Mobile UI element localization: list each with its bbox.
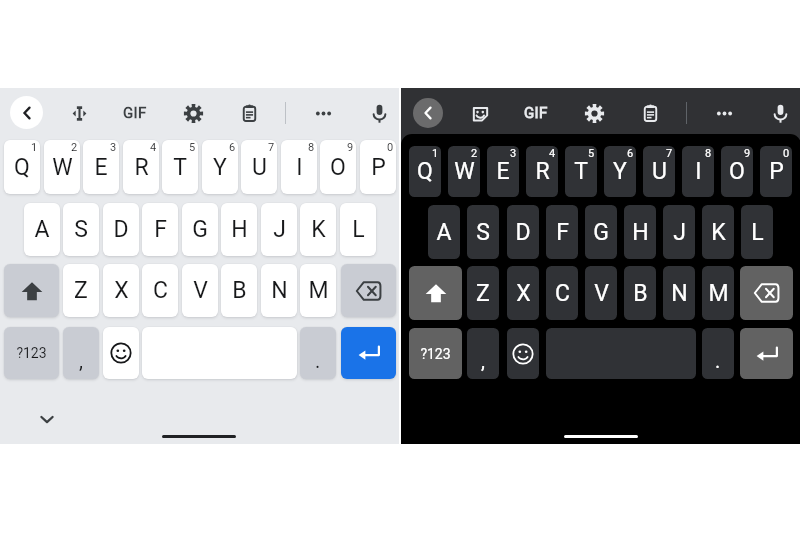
staticText: M <box>308 277 329 304</box>
button[interactable]: K <box>300 203 336 256</box>
button[interactable]: O <box>721 146 753 197</box>
button[interactable]: M <box>702 266 734 320</box>
staticText: X <box>516 280 531 307</box>
staticText: 7 <box>666 147 673 160</box>
button[interactable]: X <box>103 264 139 317</box>
button[interactable]: Backspace <box>341 264 396 317</box>
button[interactable]: B <box>624 266 656 320</box>
button[interactable]: T <box>162 140 198 194</box>
staticText: Y <box>213 154 227 181</box>
button[interactable]: Period <box>300 327 336 379</box>
button[interactable]: Y <box>604 146 636 197</box>
button[interactable]: V <box>182 264 218 317</box>
button[interactable]: Z <box>467 266 499 320</box>
staticText: S <box>476 219 490 246</box>
button[interactable]: Comma <box>63 327 99 379</box>
button[interactable]: ?123 <box>4 327 59 379</box>
button[interactable]: B <box>221 264 257 317</box>
button[interactable]: D <box>103 203 139 256</box>
button[interactable]: ?123 <box>409 328 462 379</box>
button[interactable]: Hide keyboard <box>33 405 61 433</box>
button[interactable]: W <box>448 146 480 197</box>
button[interactable]: GIF <box>118 96 152 130</box>
button[interactable]: Back <box>10 96 43 129</box>
staticText: Y <box>613 158 627 185</box>
button[interactable]: Emoji <box>103 327 139 379</box>
button[interactable]: J <box>261 203 297 256</box>
button[interactable]: E <box>487 146 519 197</box>
staticText: 6 <box>229 141 236 154</box>
staticText: 8 <box>705 147 712 160</box>
button[interactable]: P <box>360 140 396 194</box>
button[interactable]: Enter <box>740 328 793 379</box>
button[interactable]: V <box>585 266 617 320</box>
button[interactable]: Voice input <box>362 96 396 130</box>
button[interactable]: D <box>507 205 539 259</box>
button[interactable]: O <box>320 140 356 194</box>
button[interactable]: J <box>663 205 695 259</box>
button[interactable]: GIF <box>519 96 553 130</box>
button[interactable]: C <box>142 264 178 317</box>
button[interactable]: X <box>507 266 539 320</box>
staticText: 1 <box>432 147 439 160</box>
button[interactable]: F <box>546 205 578 259</box>
button[interactable]: Q <box>409 146 441 197</box>
button[interactable]: H <box>221 203 257 256</box>
button[interactable]: Y <box>202 140 238 194</box>
staticText: F <box>556 219 569 246</box>
button[interactable]: I <box>682 146 714 197</box>
staticText: N <box>271 277 288 304</box>
button[interactable]: Clipboard <box>232 96 266 130</box>
button[interactable]: R <box>123 140 159 194</box>
staticText: C <box>555 280 570 307</box>
button[interactable]: E <box>83 140 119 194</box>
button[interactable]: G <box>182 203 218 256</box>
button[interactable]: Clipboard <box>633 96 667 130</box>
button[interactable]: M <box>300 264 336 317</box>
button[interactable]: P <box>760 146 792 197</box>
button[interactable]: Shift <box>4 264 59 317</box>
button[interactable]: More options <box>707 96 741 130</box>
button[interactable]: L <box>741 205 773 259</box>
button[interactable]: N <box>663 266 695 320</box>
button[interactable]: Z <box>63 264 99 317</box>
button[interactable]: Comma <box>467 328 499 379</box>
button[interactable]: G <box>585 205 617 259</box>
button[interactable]: U <box>643 146 675 197</box>
button[interactable]: Move cursor <box>62 96 96 130</box>
button[interactable]: H <box>624 205 656 259</box>
staticText: J <box>673 219 686 246</box>
button[interactable]: W <box>44 140 80 194</box>
button[interactable]: K <box>702 205 734 259</box>
button[interactable]: Backspace <box>740 266 793 320</box>
staticText: R <box>134 154 149 181</box>
staticText: U <box>252 154 267 181</box>
button[interactable]: More options <box>306 96 340 130</box>
button[interactable]: I <box>281 140 317 194</box>
button[interactable]: U <box>241 140 277 194</box>
staticText: . <box>315 349 321 372</box>
button[interactable]: R <box>526 146 558 197</box>
button[interactable]: Settings <box>176 96 210 130</box>
button[interactable]: F <box>142 203 178 256</box>
button[interactable]: Enter <box>341 327 396 379</box>
button[interactable]: A <box>24 203 60 256</box>
button[interactable]: Period <box>702 328 734 379</box>
button[interactable]: Settings <box>577 96 611 130</box>
button[interactable]: Stickers <box>463 96 497 130</box>
button[interactable]: T <box>565 146 597 197</box>
staticText: 4 <box>150 141 157 154</box>
button[interactable]: Emoji <box>507 328 539 379</box>
button[interactable]: S <box>467 205 499 259</box>
button[interactable]: A <box>428 205 460 259</box>
button[interactable]: Back <box>413 98 443 128</box>
button[interactable]: Voice input <box>763 96 797 130</box>
button[interactable]: S <box>63 203 99 256</box>
button[interactable]: L <box>340 203 376 256</box>
button[interactable]: N <box>261 264 297 317</box>
button[interactable]: Q <box>4 140 40 194</box>
button[interactable]: C <box>546 266 578 320</box>
button[interactable]: Shift <box>409 266 462 320</box>
